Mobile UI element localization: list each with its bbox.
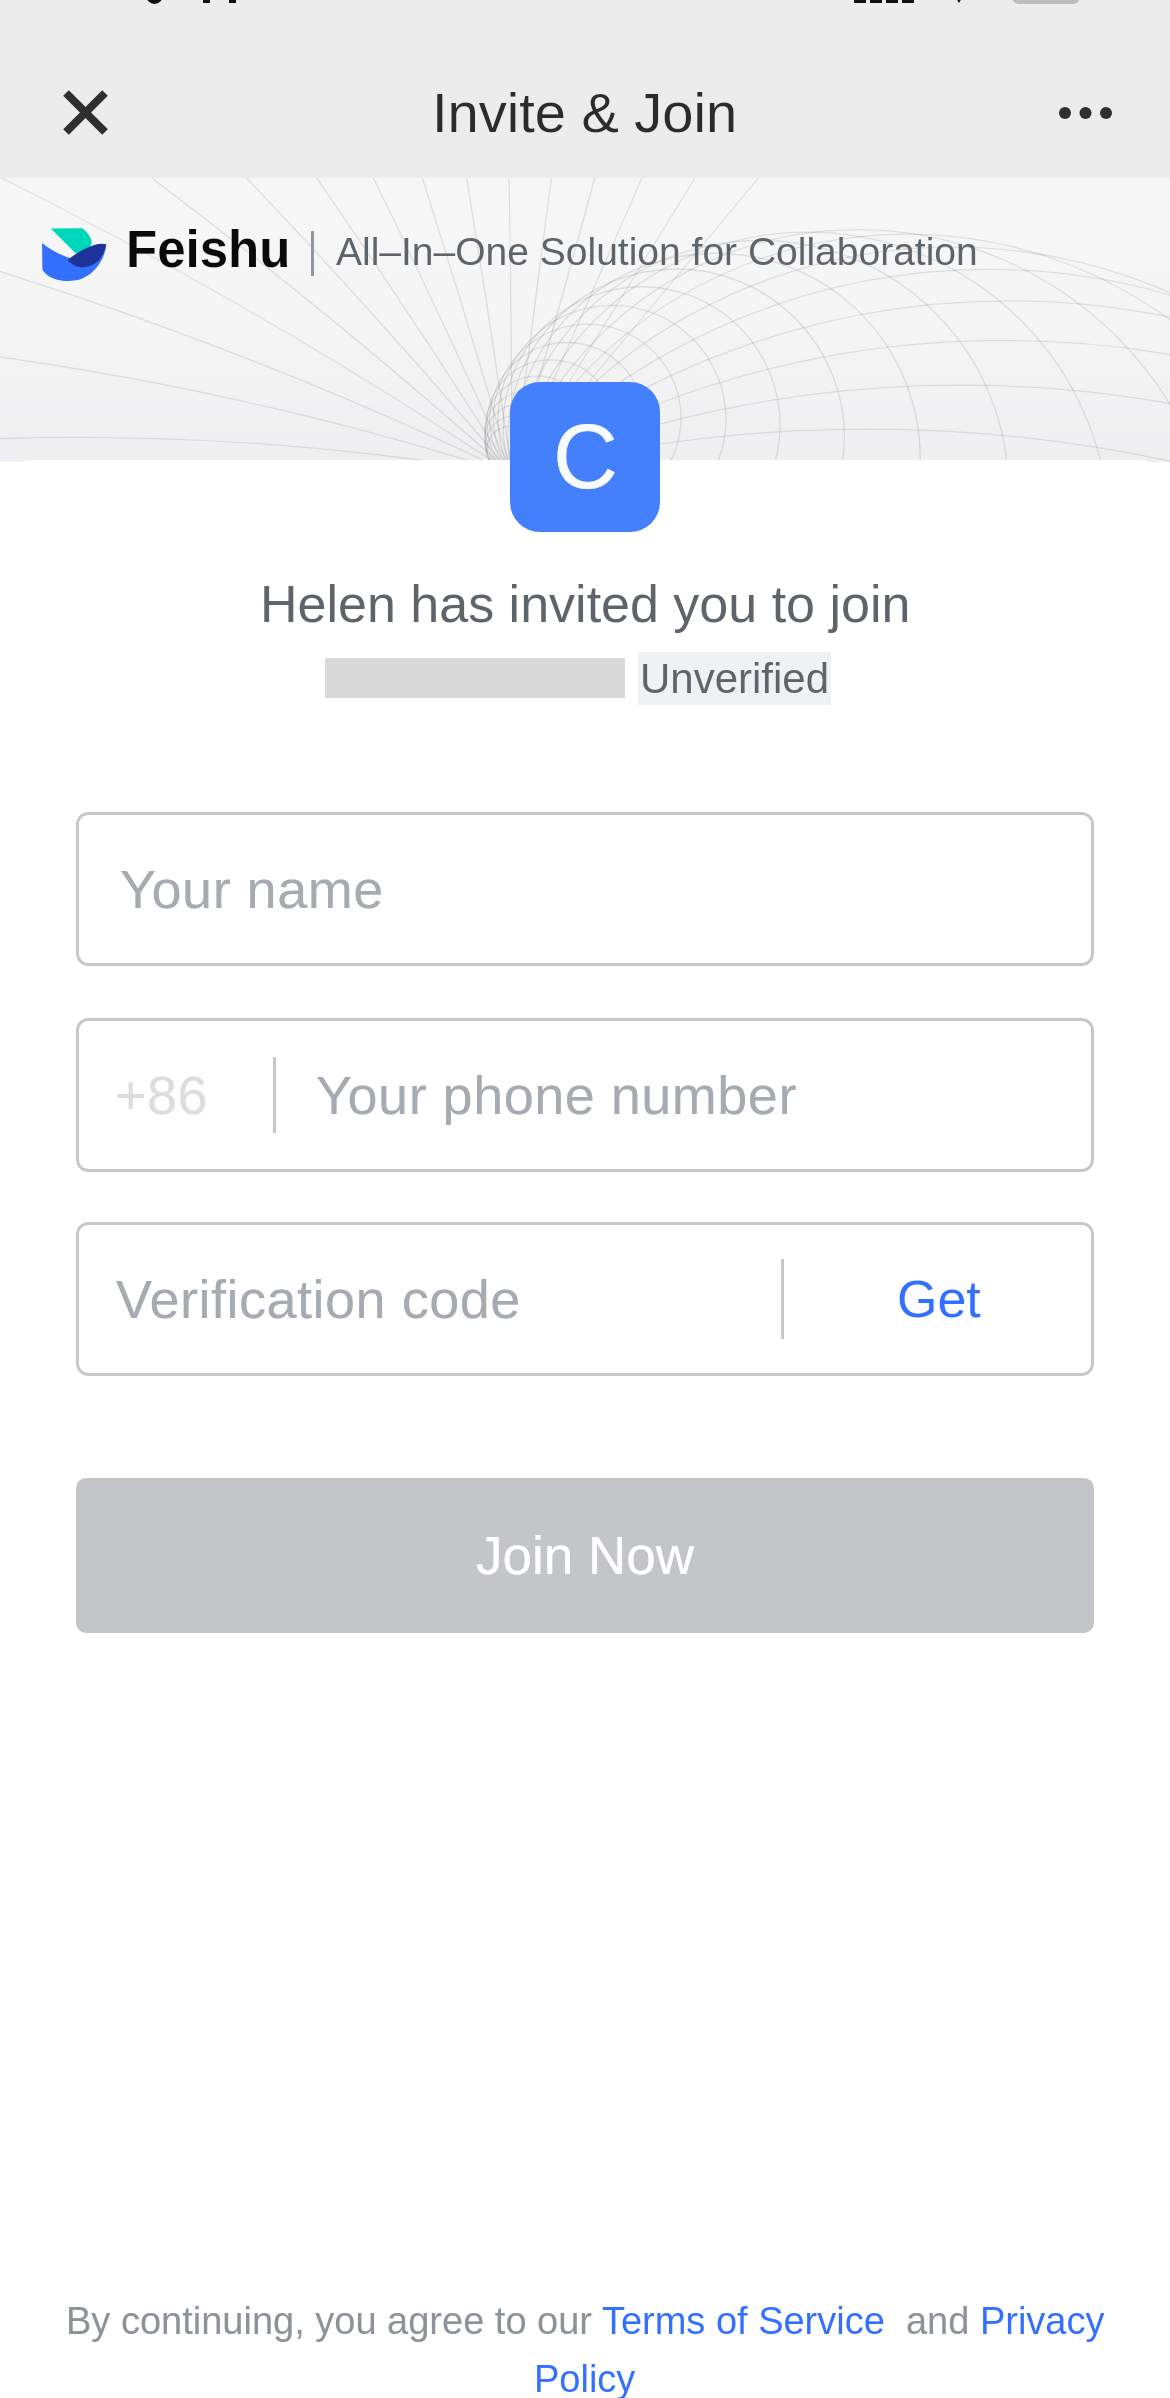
- staticText: Your phone number: [316, 1065, 797, 1125]
- staticText: Verification code: [116, 1269, 521, 1329]
- staticText: All–In–One Solution for Collaboration: [336, 230, 978, 274]
- staticText: +86: [115, 1065, 209, 1125]
- staticText: By continuing, you agree to our Terms of…: [66, 2300, 1105, 2342]
- staticText: C: [553, 407, 618, 508]
- button[interactable]: More options: [1031, 59, 1139, 167]
- staticText: Your name: [120, 859, 384, 919]
- staticText: Join Now: [476, 1526, 694, 1585]
- staticText: Feishu: [126, 221, 291, 278]
- button[interactable]: Get: [784, 1224, 1094, 1374]
- button[interactable]: Join Now: [76, 1478, 1094, 1633]
- staticText: Invite & Join: [432, 81, 738, 144]
- staticText: Policy: [534, 2358, 636, 2398]
- button[interactable]: +86: [76, 1018, 1094, 1172]
- staticText: Unverified: [640, 655, 830, 702]
- staticText: Helen has invited you to join: [260, 575, 911, 633]
- button[interactable]: Verification code: [76, 1222, 1094, 1376]
- staticText: Get: [897, 1270, 981, 1328]
- button[interactable]: Close: [31, 58, 139, 166]
- button[interactable]: Your name: [76, 812, 1094, 966]
